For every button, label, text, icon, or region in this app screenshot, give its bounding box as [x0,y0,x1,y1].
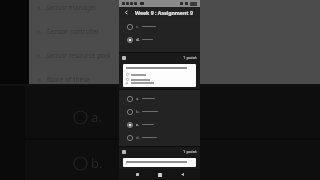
staticText: c. [136,24,140,30]
button[interactable]: c. [119,20,200,33]
button[interactable] [126,82,193,84]
staticText: Sensor controller [47,27,100,36]
staticText: Sensor resource pool [46,51,111,60]
button[interactable] [126,77,193,82]
button[interactable]: c. [119,118,200,131]
staticText: 1 point [183,149,197,155]
staticText: b. [136,109,140,115]
button[interactable]: d. [119,131,200,144]
button[interactable]: Back [122,8,131,17]
button[interactable]: a. [119,92,200,105]
staticText: Week 9 : Assignment 9 [135,9,193,16]
staticText: d. [136,135,140,141]
button[interactable]: b. [119,105,200,118]
button[interactable] [126,72,193,77]
button[interactable]: d. [119,33,200,46]
button[interactable]: Home [155,170,164,179]
staticText: a. [136,96,140,102]
button[interactable]: Recent apps [133,170,142,179]
staticText: None of these [47,75,90,84]
button[interactable]: Back [178,170,187,179]
staticText: c. [136,122,140,128]
staticText: 1 point [183,55,197,61]
staticText: a. [91,108,102,126]
staticText: b. [91,154,103,172]
staticText: d. [136,37,140,43]
staticText: Sensor manager [46,3,97,12]
